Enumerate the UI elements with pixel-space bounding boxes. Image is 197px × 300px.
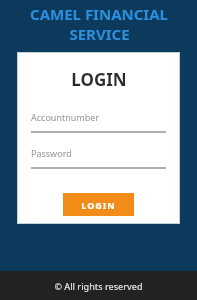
- staticText: SERVICE: [69, 24, 130, 44]
- button[interactable]: LOGIN: [63, 193, 134, 216]
- staticText: LOGIN: [81, 199, 116, 211]
- staticText: Password: [31, 147, 72, 159]
- staticText: CAMEL FINANCIAL: [30, 4, 168, 24]
- staticText: LOGIN: [71, 68, 127, 91]
- staticText: © All rights reserved: [54, 280, 143, 292]
- staticText: Accountnumber: [31, 111, 100, 123]
- button[interactable]: Accountnumber: [31, 111, 166, 133]
- button[interactable]: Password: [31, 147, 166, 169]
